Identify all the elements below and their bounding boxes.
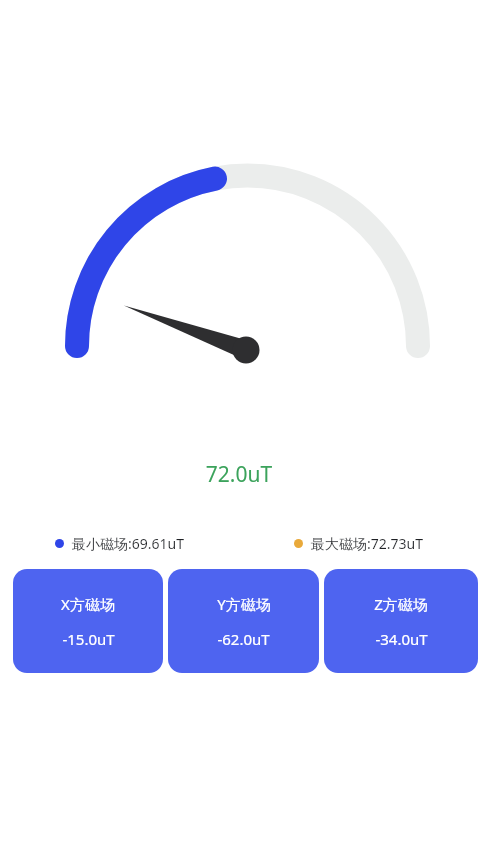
staticText: 最大磁场:72.73uT [311, 534, 423, 553]
staticText: Z方磁场 [374, 594, 428, 614]
staticText: -62.0uT [217, 629, 270, 649]
staticText: -34.0uT [375, 629, 428, 649]
button[interactable]: Z方磁场 [324, 569, 478, 673]
button[interactable]: X方磁场 [13, 569, 163, 673]
staticText: -15.0uT [62, 629, 115, 649]
staticText: Y方磁场 [217, 594, 271, 614]
other: Magnetic field gauge [0, 0, 478, 850]
staticText: 最小磁场:69.61uT [72, 534, 184, 553]
staticText: 72.0uT [0, 460, 478, 489]
button[interactable]: 最大磁场:72.73uT [239, 534, 478, 553]
button[interactable]: Y方磁场 [168, 569, 319, 673]
button[interactable]: 最小磁场:69.61uT [0, 534, 239, 553]
staticText: X方磁场 [61, 594, 115, 614]
